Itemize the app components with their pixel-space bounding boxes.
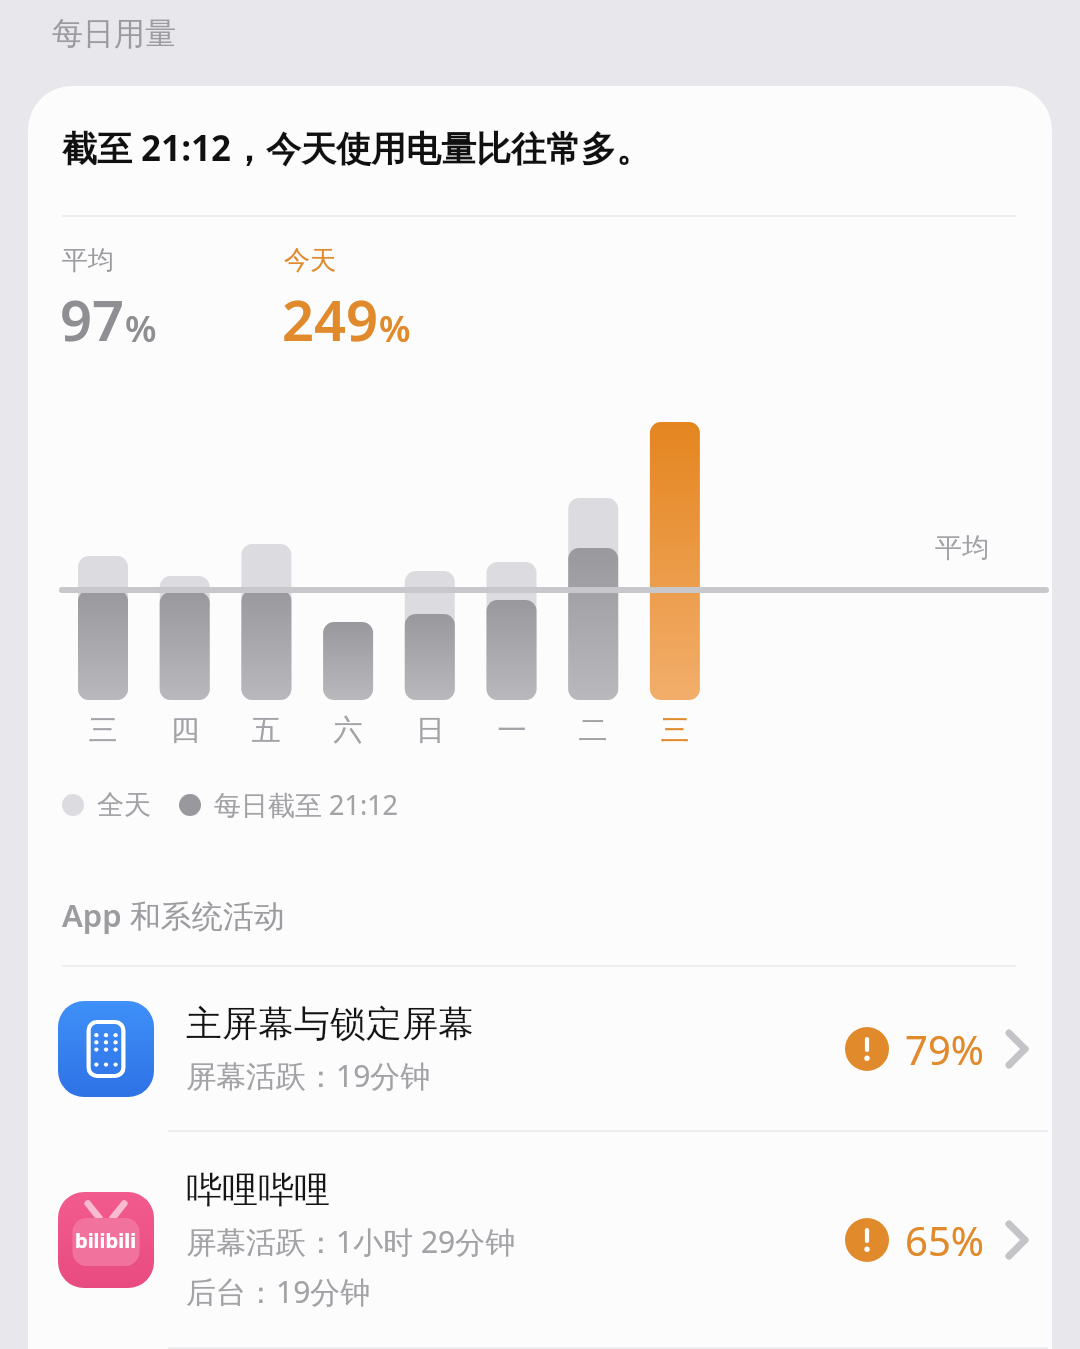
staticText: 日 (406, 712, 454, 749)
staticText: App 和系统活动 (62, 894, 285, 936)
staticText: 每日截至 21:12 (214, 786, 399, 823)
button[interactable]: 主屏幕与锁定屏幕 (28, 967, 1052, 1130)
staticText: 四 (161, 712, 209, 749)
staticText: 后台：19分钟 (186, 1271, 371, 1312)
staticText: 65% (905, 1213, 984, 1267)
staticText: 六 (324, 712, 372, 749)
other: Details (1006, 1030, 1028, 1068)
staticText: 截至 21:12，今天使用电量比往常多。 (62, 124, 652, 172)
staticText: % (125, 304, 157, 353)
staticText: 平均 (62, 244, 114, 277)
staticText: 二 (569, 712, 617, 749)
staticText: bilibili (75, 1227, 137, 1254)
other: Details (1006, 1221, 1028, 1259)
staticText: 一 (488, 712, 536, 749)
staticText: 今天 (284, 244, 336, 277)
staticText: 每日用量 (52, 14, 176, 53)
staticText: 249 (282, 281, 379, 357)
staticText: 79% (905, 1022, 984, 1076)
staticText: 哔哩哔哩 (186, 1167, 330, 1212)
staticText: 三 (651, 712, 699, 749)
staticText: 平均 (935, 531, 989, 565)
staticText: % (379, 304, 411, 353)
button[interactable]: bilibili (28, 1132, 1052, 1347)
staticText: 屏幕活跃：19分钟 (186, 1055, 431, 1096)
staticText: 主屏幕与锁定屏幕 (186, 1001, 474, 1046)
staticText: 五 (242, 712, 290, 749)
staticText: 屏幕活跃：1小时 29分钟 (186, 1221, 516, 1262)
staticText: 全天 (97, 788, 151, 822)
staticText: 三 (79, 712, 127, 749)
staticText: 97 (60, 281, 125, 357)
